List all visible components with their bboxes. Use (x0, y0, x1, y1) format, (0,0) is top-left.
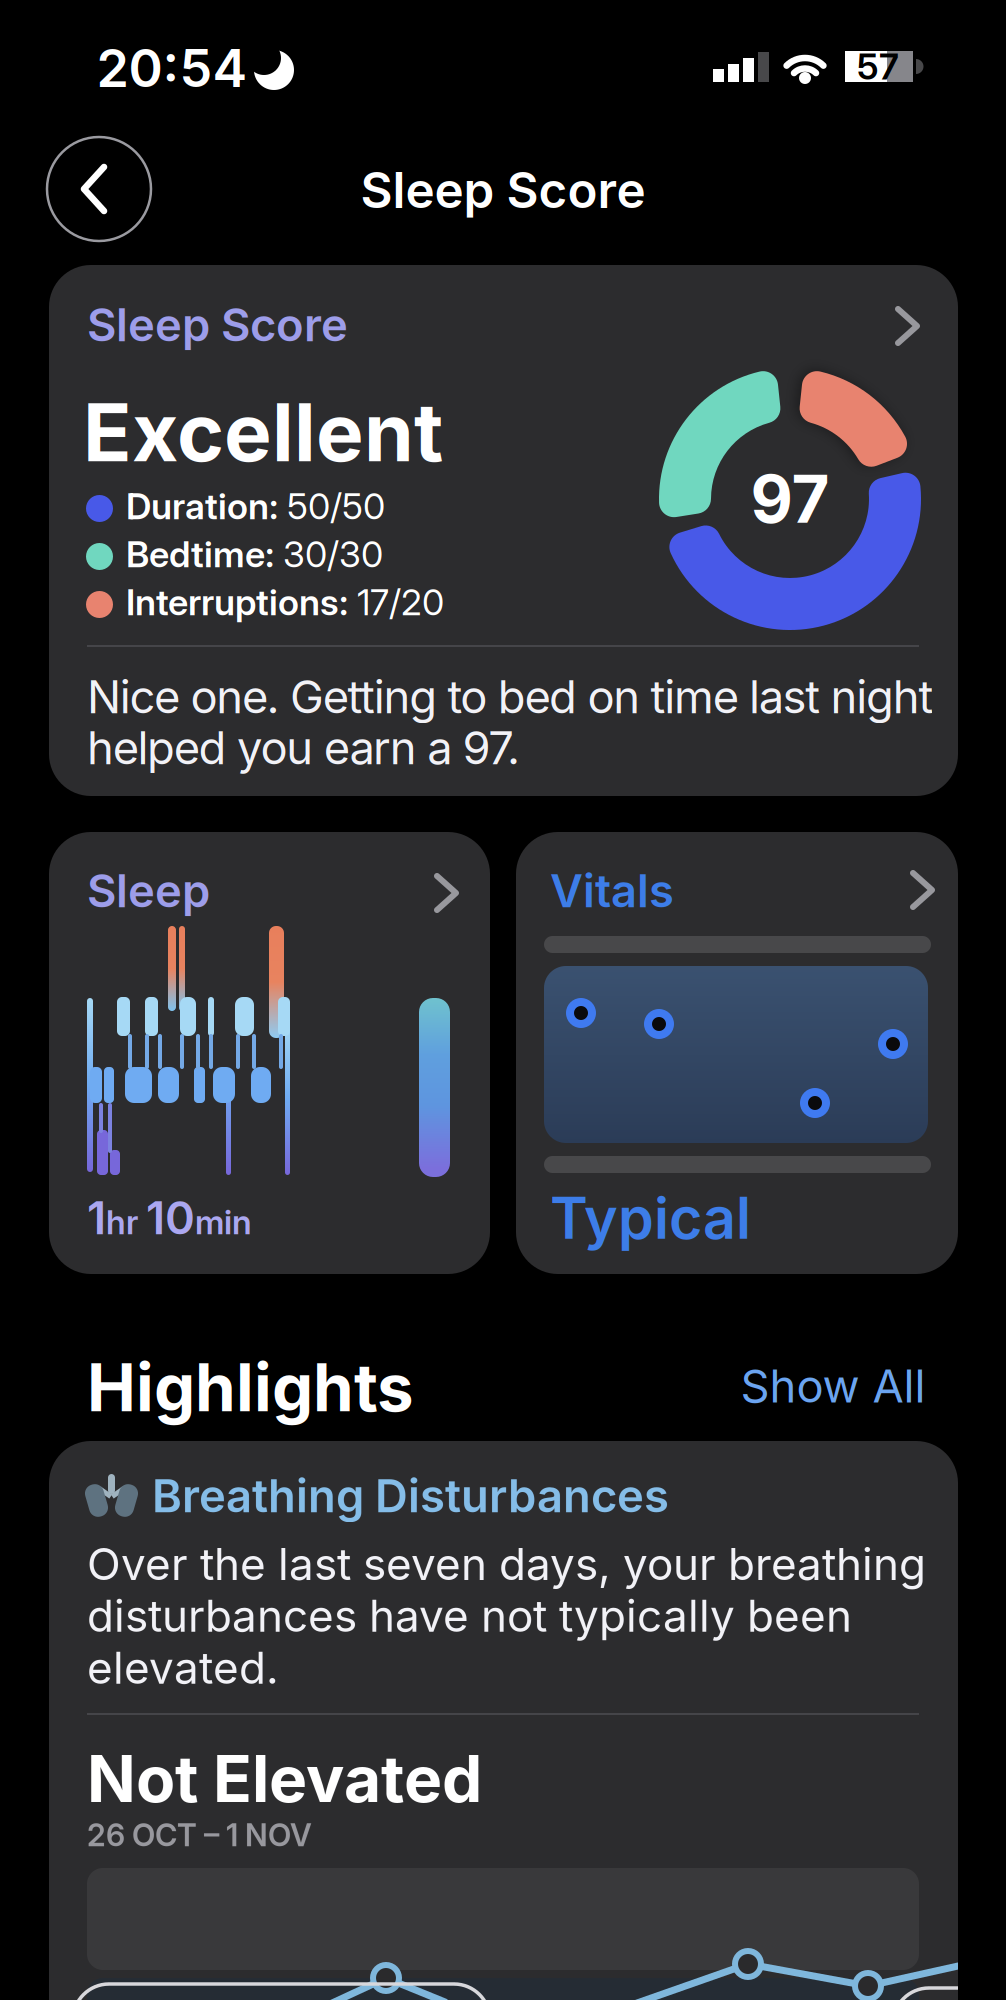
staticText: 97 (750, 460, 829, 538)
staticText: Breathing Disturbances (152, 1469, 669, 1522)
staticText: Sleep Score (87, 298, 348, 351)
staticText: Show All (740, 1359, 925, 1413)
staticText: helped you earn a 97. (87, 721, 520, 774)
staticText: Duration: 50/50 (126, 485, 385, 527)
staticText: 57 (857, 45, 899, 88)
staticText: Over the last seven days, your breathing… (87, 1538, 926, 1694)
button[interactable]: Show All (740, 1359, 925, 1413)
staticText: Bedtime: 30/30 (126, 533, 383, 575)
staticText: Nice one. Getting to bed on time last ni… (87, 670, 933, 723)
button[interactable]: Sleep (49, 832, 490, 1274)
staticText: Vitals (550, 864, 674, 917)
staticText: Interruptions: 17/20 (126, 581, 444, 623)
staticText: 26 OCT – 1 NOV (87, 1817, 312, 1853)
staticText: 1hr 10min (87, 1191, 252, 1244)
staticText: Excellent (83, 385, 443, 479)
button[interactable]: Vitals (516, 832, 958, 1274)
button[interactable]: Breathing Disturbances (49, 1441, 958, 2000)
staticText: Sleep Score (360, 161, 645, 219)
staticText: Not Elevated (87, 1741, 482, 1816)
staticText: 20:54 (96, 37, 247, 99)
button[interactable] (47, 137, 151, 241)
button[interactable]: Sleep Score (49, 265, 958, 796)
staticText: Highlights (87, 1349, 414, 1426)
staticText: Sleep (87, 864, 210, 917)
staticText: Typical (550, 1184, 751, 1252)
